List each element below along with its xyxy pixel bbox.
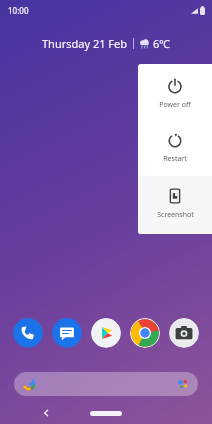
button[interactable]: Screenshot bbox=[138, 176, 212, 234]
button[interactable]: Back bbox=[38, 405, 54, 421]
staticText: Thursday 21 Feb bbox=[42, 36, 128, 51]
button[interactable] bbox=[14, 372, 198, 396]
button[interactable]: Thursday 21 Feb bbox=[0, 36, 212, 51]
staticText: 10:00 bbox=[8, 5, 29, 16]
staticText: Restart bbox=[163, 154, 187, 164]
staticText: 6℃ bbox=[153, 36, 171, 51]
button[interactable]: Restart bbox=[138, 120, 212, 176]
button[interactable]: Chrome bbox=[130, 318, 160, 348]
staticText: Screenshot bbox=[157, 210, 194, 220]
button[interactable]: Camera bbox=[169, 318, 199, 348]
staticText: Power off bbox=[159, 100, 191, 110]
button[interactable]: Phone bbox=[13, 318, 43, 348]
button[interactable]: Power off bbox=[138, 64, 212, 120]
button[interactable]: Home bbox=[90, 411, 122, 416]
button[interactable]: Play Store bbox=[91, 318, 121, 348]
button[interactable]: Messages bbox=[52, 318, 82, 348]
